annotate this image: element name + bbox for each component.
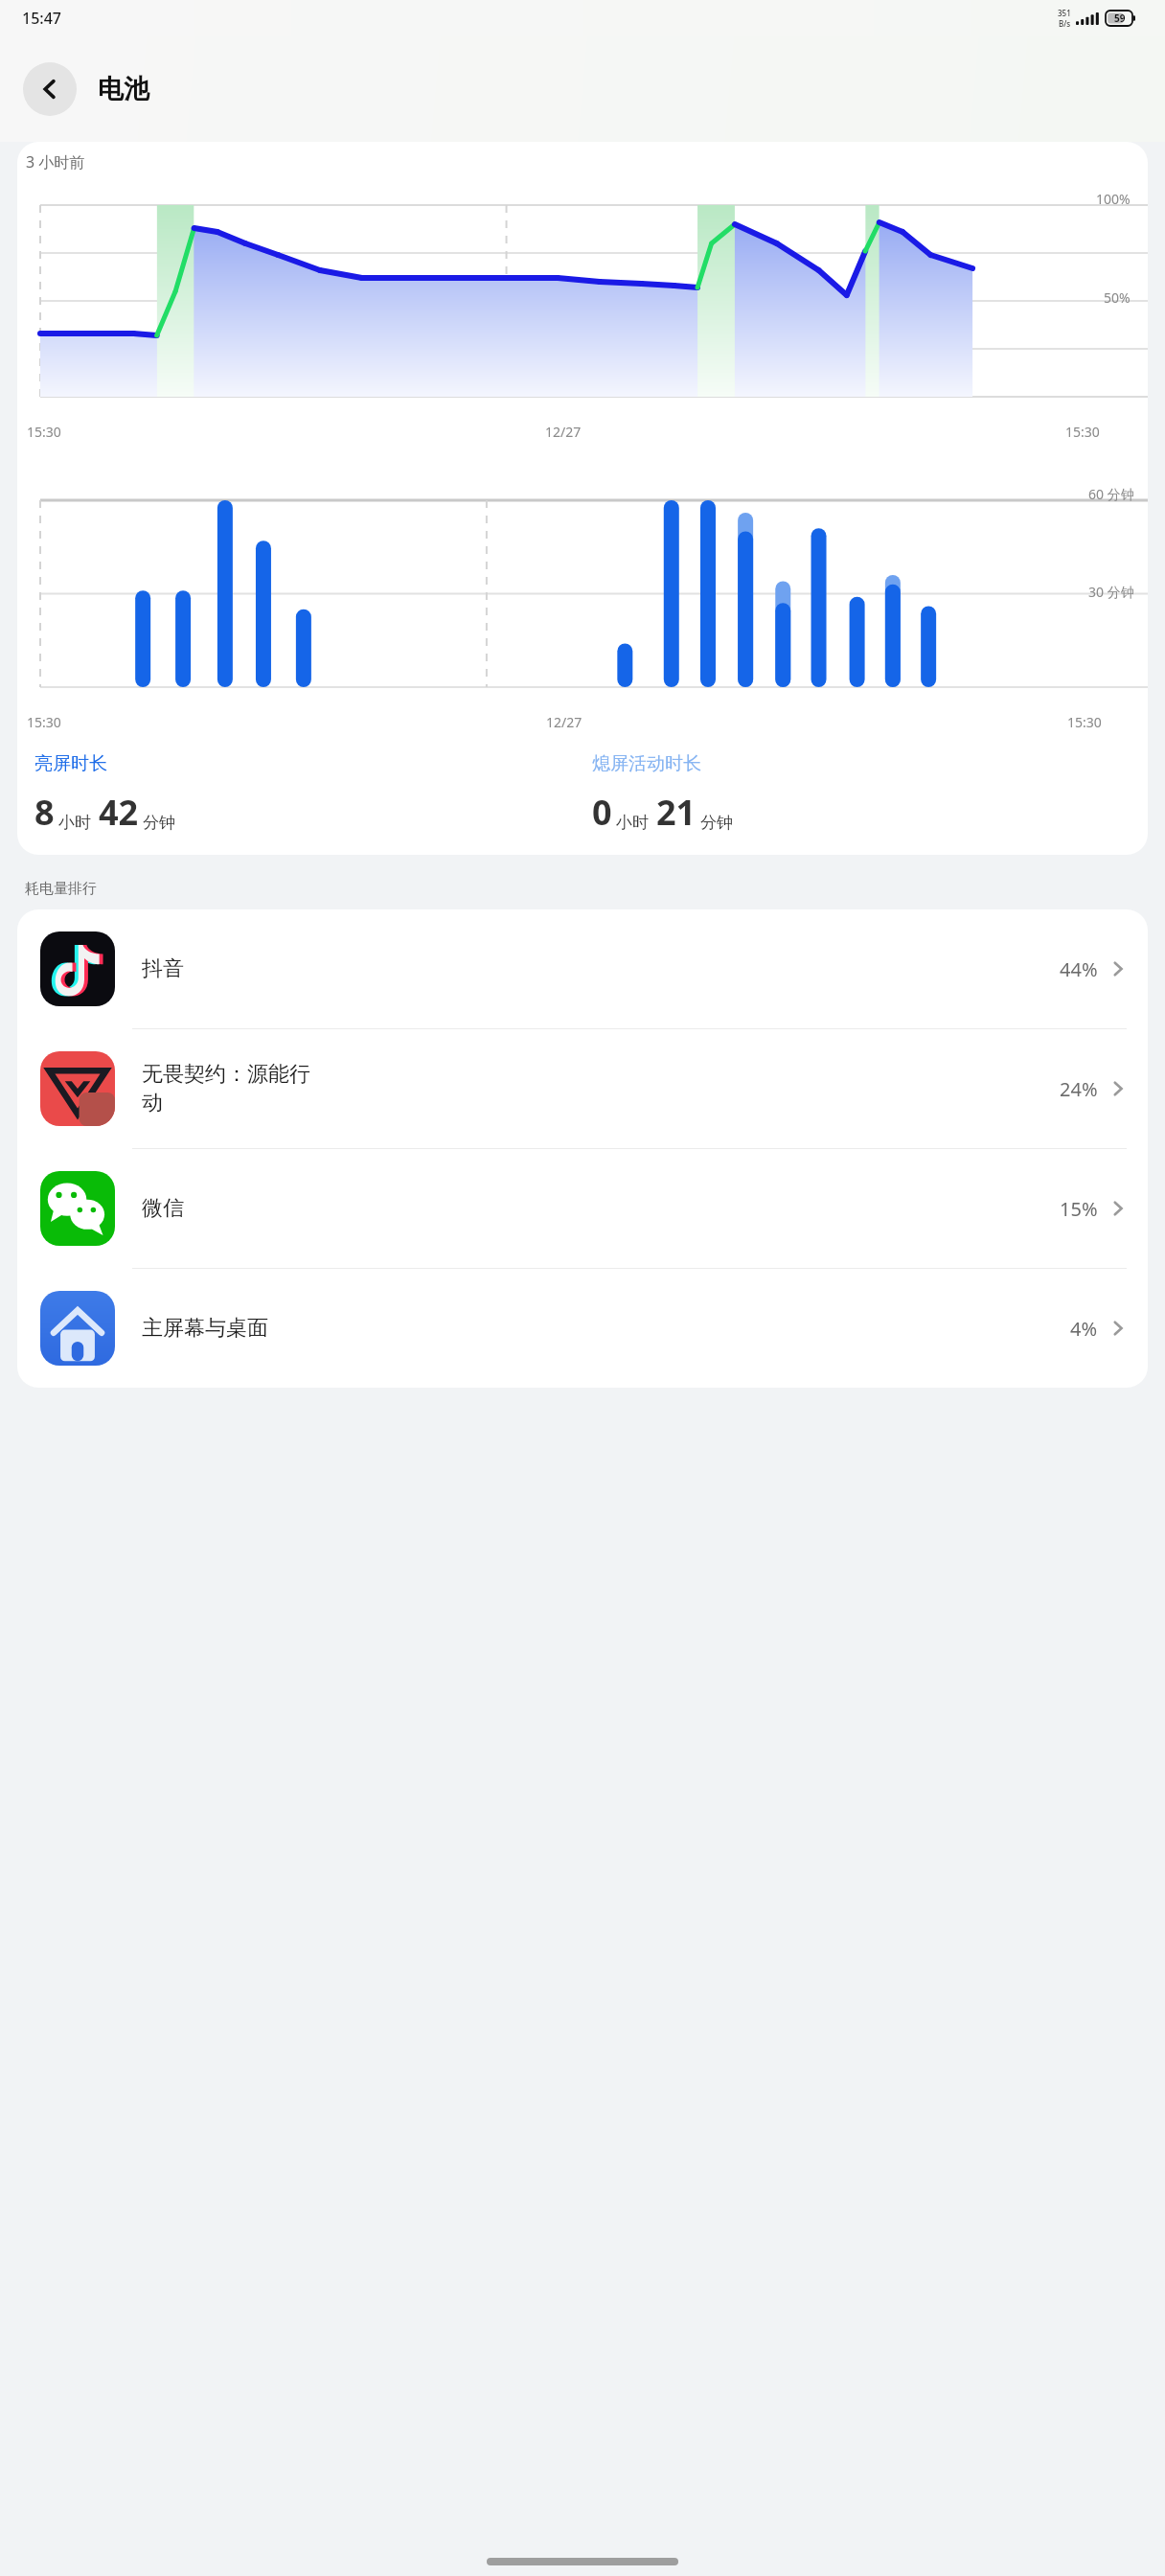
staticText: B/s: [1059, 18, 1071, 29]
staticText: 12/27: [545, 423, 582, 441]
button[interactable]: 亮屏时长: [25, 752, 582, 836]
staticText: 无畏契约：源能行 动: [142, 1061, 1060, 1116]
staticText: 12/27: [546, 713, 582, 731]
staticText: 分钟: [143, 813, 175, 833]
staticText: 电池: [98, 73, 149, 105]
staticText: 100%: [1096, 190, 1131, 208]
staticText: 分钟: [700, 813, 733, 833]
staticText: 主屏幕与桌面: [142, 1315, 1070, 1342]
staticText: 24%: [1060, 1076, 1098, 1102]
staticText: 30 分钟: [1088, 583, 1134, 601]
button[interactable]: 主屏幕与桌面: [17, 1269, 1148, 1388]
staticText: 59: [1114, 11, 1126, 25]
staticText: 15:30: [27, 713, 61, 731]
staticText: 小时: [616, 813, 649, 833]
staticText: 351: [1058, 8, 1071, 18]
staticText: 小时: [58, 813, 91, 833]
button[interactable]: 无畏契约：源能行 动: [17, 1029, 1148, 1148]
button[interactable]: 熄屏活动时长: [582, 752, 1140, 836]
staticText: 15%: [1060, 1196, 1098, 1222]
staticText: 60 分钟: [1088, 485, 1134, 503]
button[interactable]: 返回: [23, 62, 77, 116]
staticText: 15:30: [1065, 423, 1100, 441]
staticText: 15:30: [27, 423, 61, 441]
staticText: 抖音: [142, 955, 1060, 982]
staticText: 熄屏活动时长: [592, 752, 701, 775]
staticText: 21: [656, 789, 697, 836]
staticText: 4%: [1070, 1316, 1098, 1342]
staticText: 50%: [1104, 288, 1131, 307]
staticText: 亮屏时长: [34, 752, 107, 775]
button[interactable]: 微信: [17, 1149, 1148, 1268]
button[interactable]: 抖音: [17, 909, 1148, 1028]
staticText: 3 小时前: [26, 151, 85, 172]
staticText: 42: [99, 789, 139, 836]
staticText: 15:30: [1067, 713, 1102, 731]
staticText: 0: [592, 789, 612, 836]
staticText: 微信: [142, 1195, 1060, 1222]
staticText: 15:47: [22, 8, 61, 29]
staticText: 耗电量排行: [25, 880, 97, 898]
staticText: 44%: [1060, 956, 1098, 982]
staticText: 8: [34, 789, 55, 836]
